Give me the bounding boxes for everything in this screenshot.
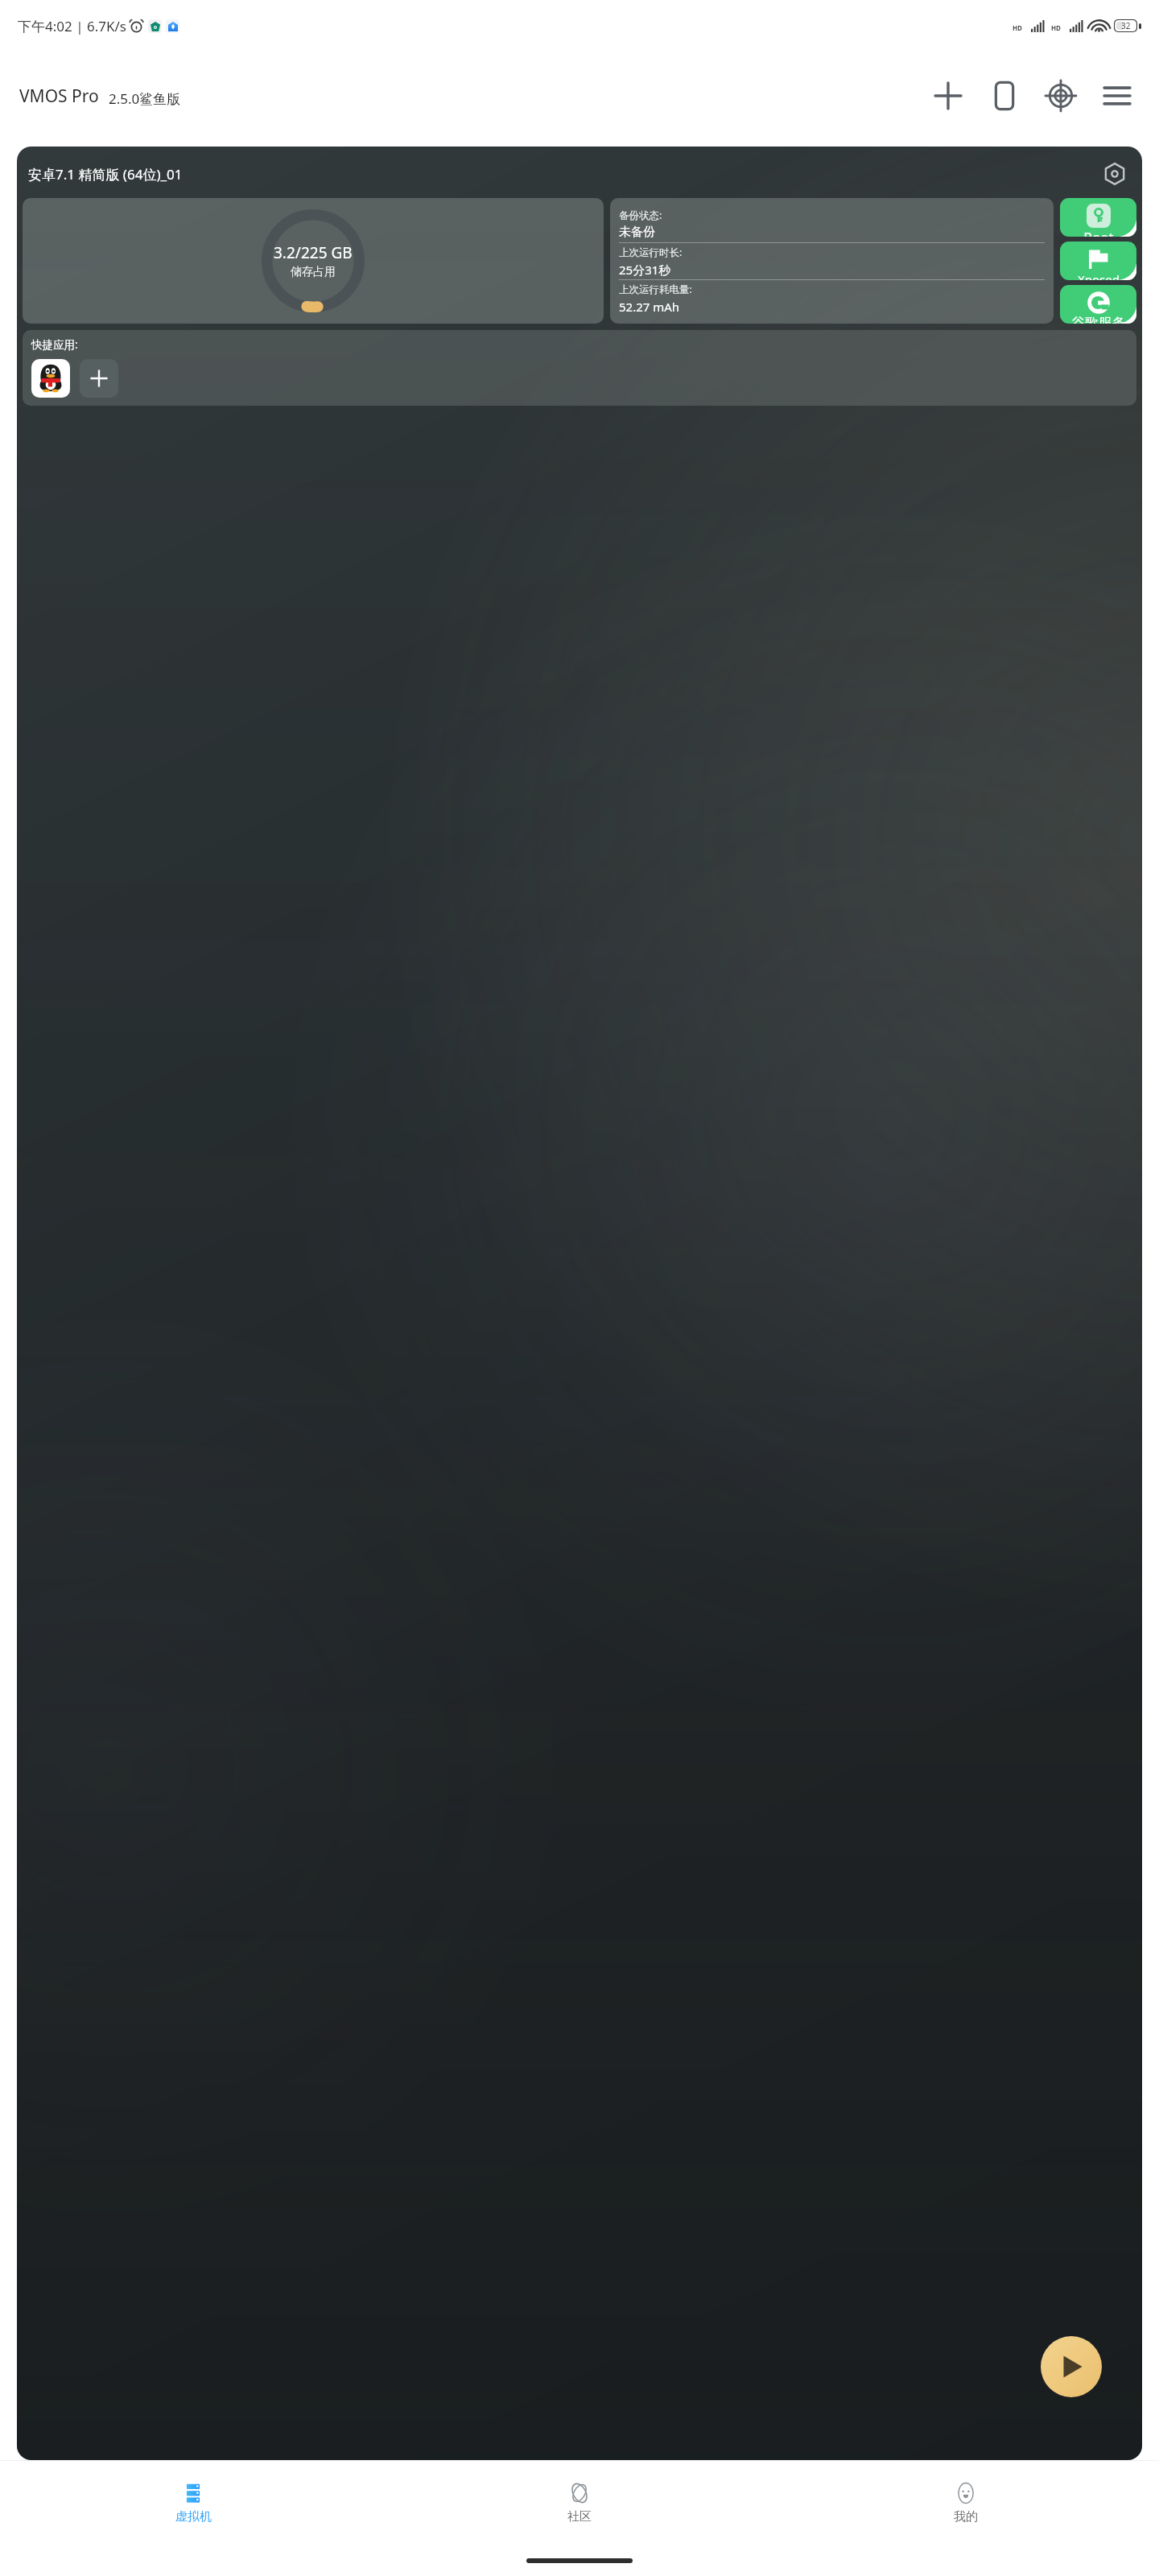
staticText: 下午4:02 | 6.7K/s xyxy=(18,17,126,35)
button[interactable]: Menu xyxy=(1095,73,1140,118)
staticText: 谷歌服务 xyxy=(1071,315,1126,324)
button[interactable]: 社区 xyxy=(386,2461,773,2545)
button[interactable]: Add app xyxy=(80,359,118,398)
staticText: 3.2/225 GB xyxy=(274,242,353,263)
staticText: 上次运行时长: xyxy=(619,246,683,259)
staticText: VMOS Pro xyxy=(19,85,99,108)
staticText: 52.27 mAh xyxy=(619,299,680,315)
button[interactable]: 谷歌服务 xyxy=(1060,285,1136,324)
button[interactable]: Xposed xyxy=(1060,242,1136,280)
button[interactable]: 3.2/225 GB xyxy=(23,198,604,324)
staticText: 虚拟机 xyxy=(175,2509,212,2524)
staticText: HD xyxy=(1013,23,1022,32)
staticText: 2.5.0鲨鱼版 xyxy=(109,89,181,108)
staticText: 未备份 xyxy=(619,225,655,240)
staticText: 储存占用 xyxy=(291,265,336,279)
button[interactable]: 我的 xyxy=(773,2461,1159,2545)
staticText: 社区 xyxy=(567,2509,592,2524)
button[interactable]: Root xyxy=(1060,198,1136,237)
staticText: 25分31秒 xyxy=(619,262,671,278)
button[interactable]: 备份状态: xyxy=(610,198,1054,324)
staticText: 上次运行耗电量: xyxy=(619,283,692,296)
staticText: 备份状态: xyxy=(619,208,662,222)
staticText: 安卓7.1 精简版 (64位)_01 xyxy=(28,165,183,184)
button[interactable]: Target xyxy=(1038,73,1083,118)
button[interactable]: Add virtual machine xyxy=(926,73,971,118)
staticText: HD xyxy=(1051,23,1061,32)
staticText: 快捷应用: xyxy=(31,337,78,352)
staticText: 32 xyxy=(1121,20,1131,31)
button[interactable]: Settings xyxy=(1099,158,1131,190)
staticText: Xposed xyxy=(1078,271,1120,280)
button[interactable]: 虚拟机 xyxy=(0,2461,386,2545)
button[interactable]: Device frame xyxy=(982,73,1027,118)
staticText: 我的 xyxy=(954,2509,978,2524)
button[interactable]: Start virtual machine xyxy=(1041,2336,1102,2397)
button[interactable]: QQ xyxy=(31,359,70,398)
staticText: Root xyxy=(1083,228,1114,237)
